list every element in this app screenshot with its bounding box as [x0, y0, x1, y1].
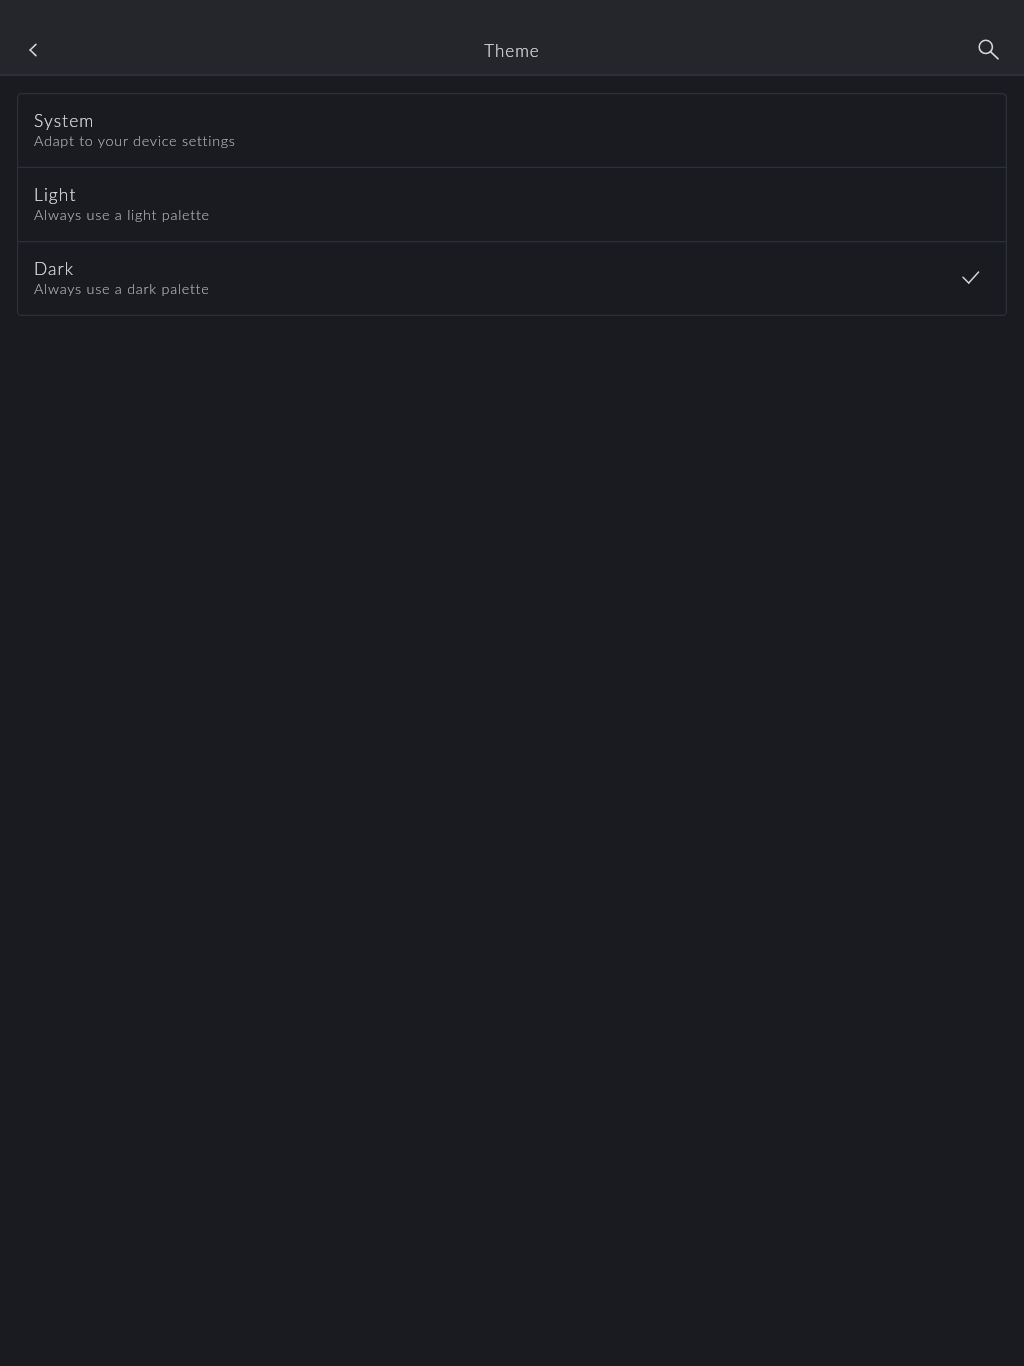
button[interactable]: Search [964, 26, 1012, 74]
button[interactable]: System [17, 93, 1007, 167]
staticText: Light [34, 184, 77, 205]
staticText: Always use a dark palette [34, 280, 210, 297]
button[interactable]: Dark [17, 241, 1007, 315]
staticText: System [34, 110, 95, 131]
button[interactable]: Light [17, 167, 1007, 241]
staticText: Theme [484, 40, 540, 60]
staticText: Always use a light palette [34, 206, 210, 223]
other: Selected [956, 264, 984, 292]
staticText: Adapt to your device settings [34, 132, 236, 149]
staticText: Dark [34, 258, 75, 279]
button[interactable]: Back [9, 26, 57, 74]
